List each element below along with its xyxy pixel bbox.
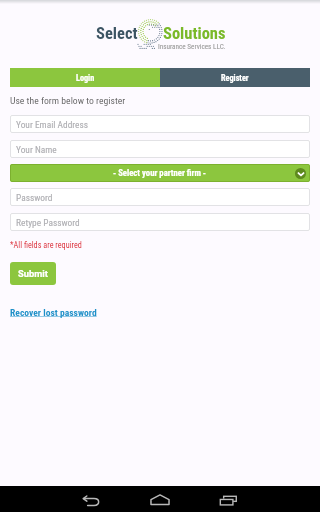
staticText: Password [16, 192, 53, 203]
button[interactable]: Your Name [10, 140, 310, 158]
staticText: Retype Password [16, 217, 80, 228]
staticText: Login [76, 73, 95, 83]
button[interactable]: Your Email Address [10, 115, 310, 133]
button[interactable]: Recover lost password [10, 307, 97, 318]
button[interactable]: Login [10, 68, 160, 87]
staticText: Insurance Services LLC. [158, 42, 226, 50]
staticText: Use the form below to register [10, 95, 126, 106]
button[interactable]: Back [72, 488, 112, 512]
button[interactable]: Home [140, 487, 180, 512]
staticText: *All fields are required [10, 240, 82, 250]
button[interactable]: - Select your partner firm - [10, 164, 310, 182]
staticText: Submit [18, 268, 48, 279]
staticText: Your Email Address [16, 119, 89, 130]
staticText: Select [96, 24, 138, 43]
button[interactable]: Password [10, 188, 310, 206]
staticText: Register [221, 73, 249, 83]
staticText: - Select your partner firm - [113, 168, 207, 178]
button[interactable]: Submit [10, 262, 56, 285]
button[interactable]: Recent apps [208, 487, 248, 512]
staticText: Solutions [163, 24, 226, 43]
button[interactable]: Register [160, 68, 310, 87]
staticText: Your Name [16, 144, 57, 155]
staticText: Recover lost password [10, 307, 97, 318]
button[interactable]: Retype Password [10, 213, 310, 231]
